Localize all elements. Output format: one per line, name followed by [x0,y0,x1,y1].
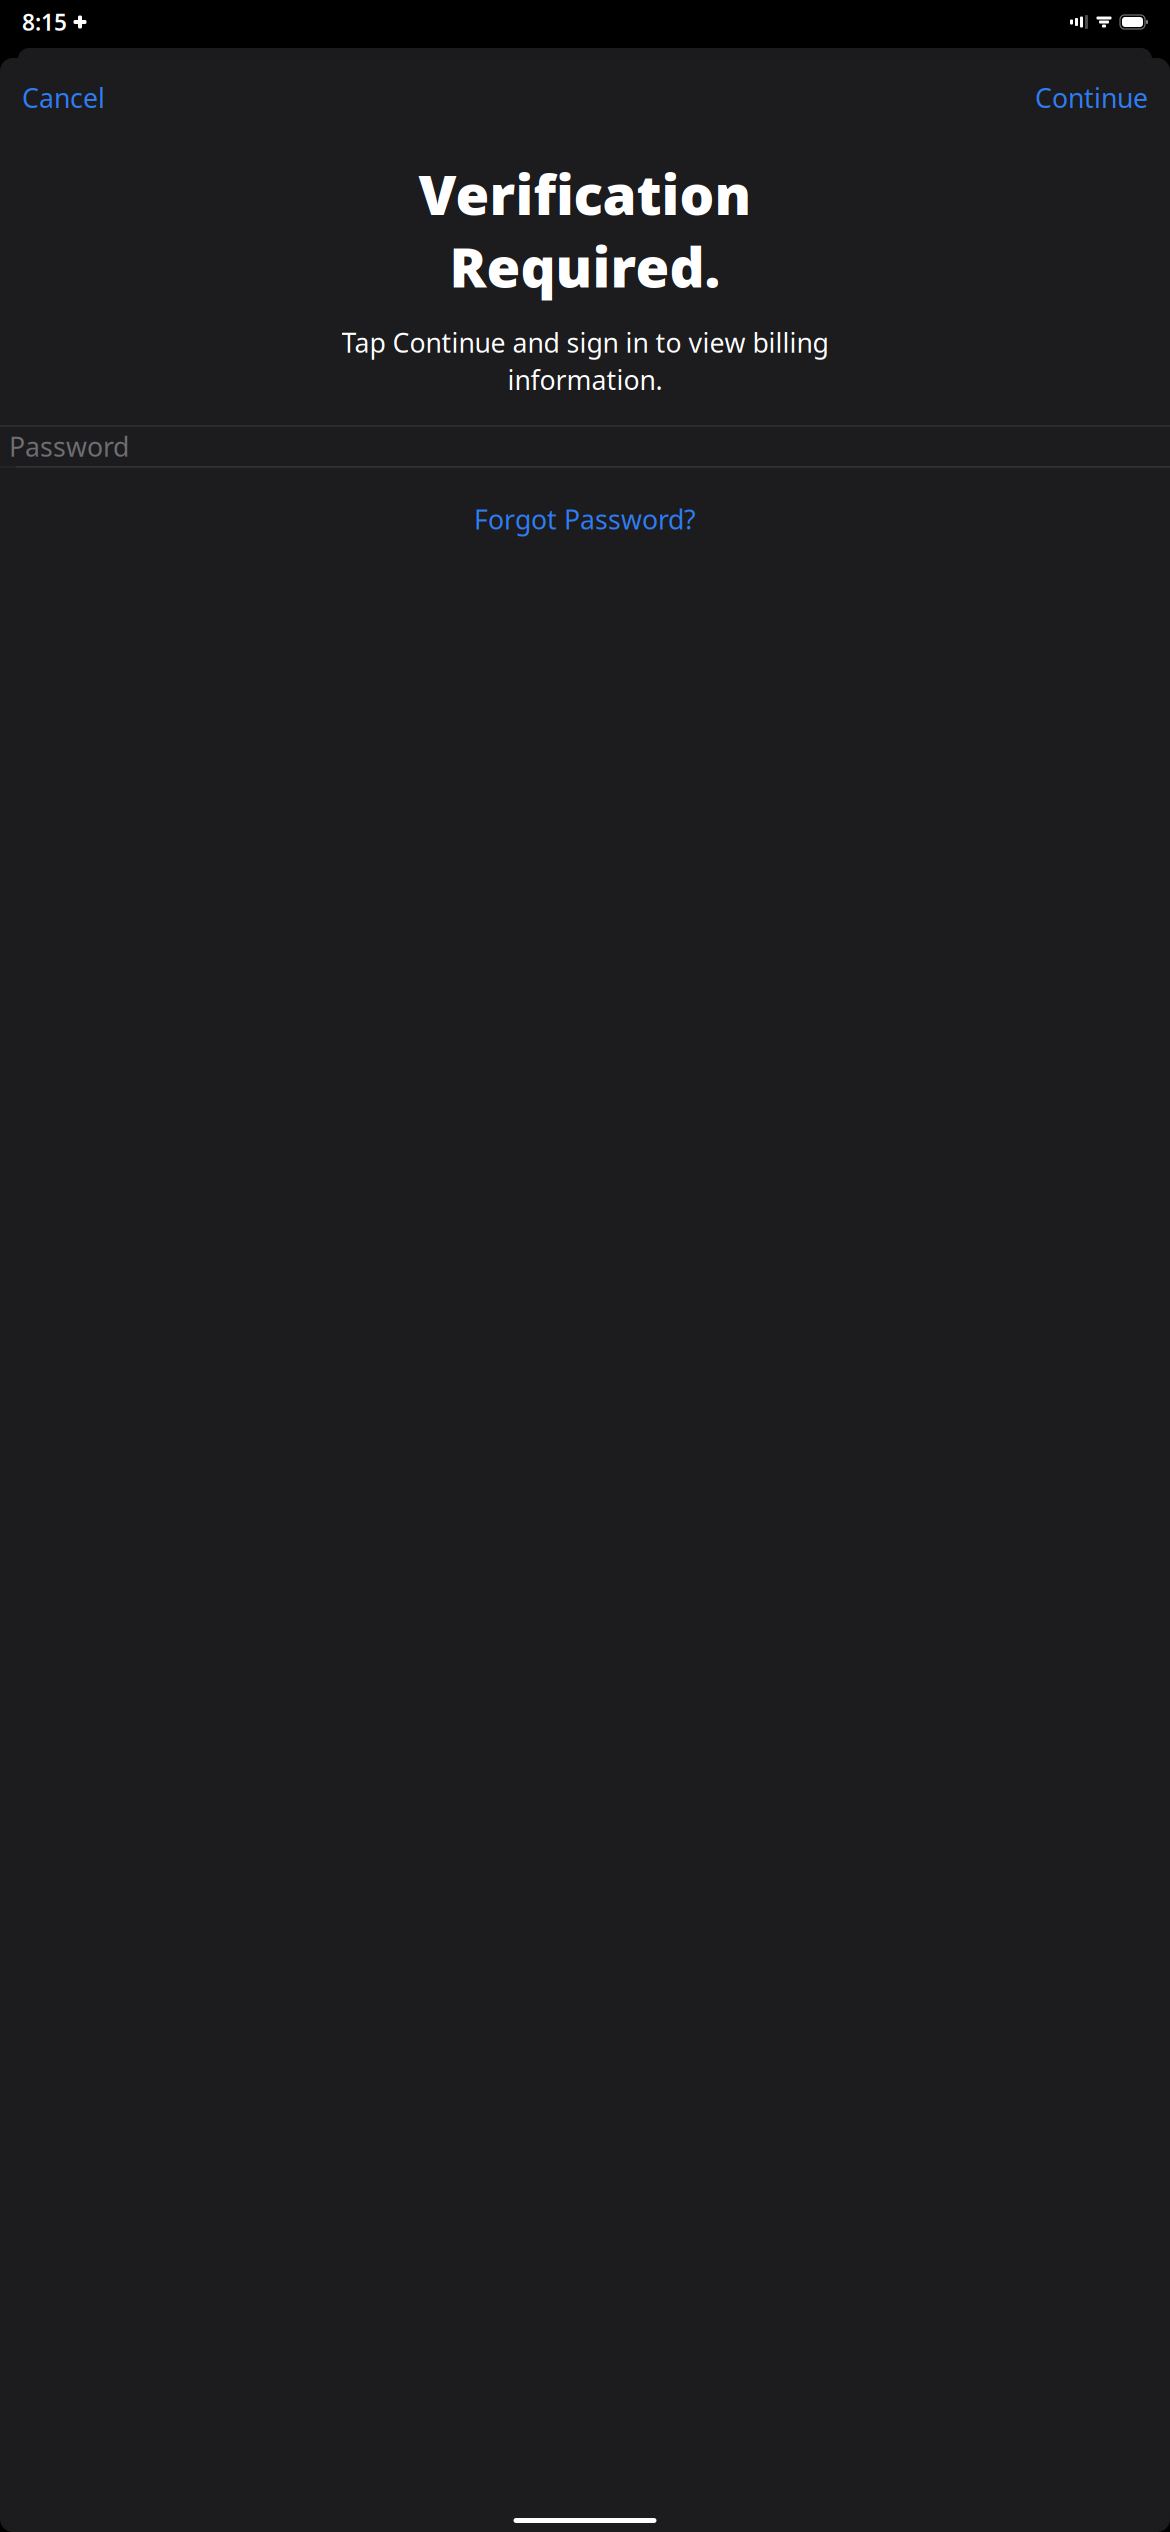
staticText: Cancel [22,80,105,115]
staticText: Required. [449,230,720,303]
button[interactable]: Continue [1029,72,1154,123]
staticText: Tap Continue and sign in to view billing [341,325,828,360]
button[interactable]: Password [0,426,1170,466]
button[interactable]: Cancel [16,72,111,123]
staticText: Password [9,429,129,464]
staticText: 8:15 [22,7,67,37]
staticText: Verification [418,157,751,230]
staticText: Forgot Password? [474,501,696,537]
button[interactable]: Forgot Password? [0,493,1170,545]
staticText: information. [507,362,662,397]
staticText: Continue [1035,80,1148,115]
